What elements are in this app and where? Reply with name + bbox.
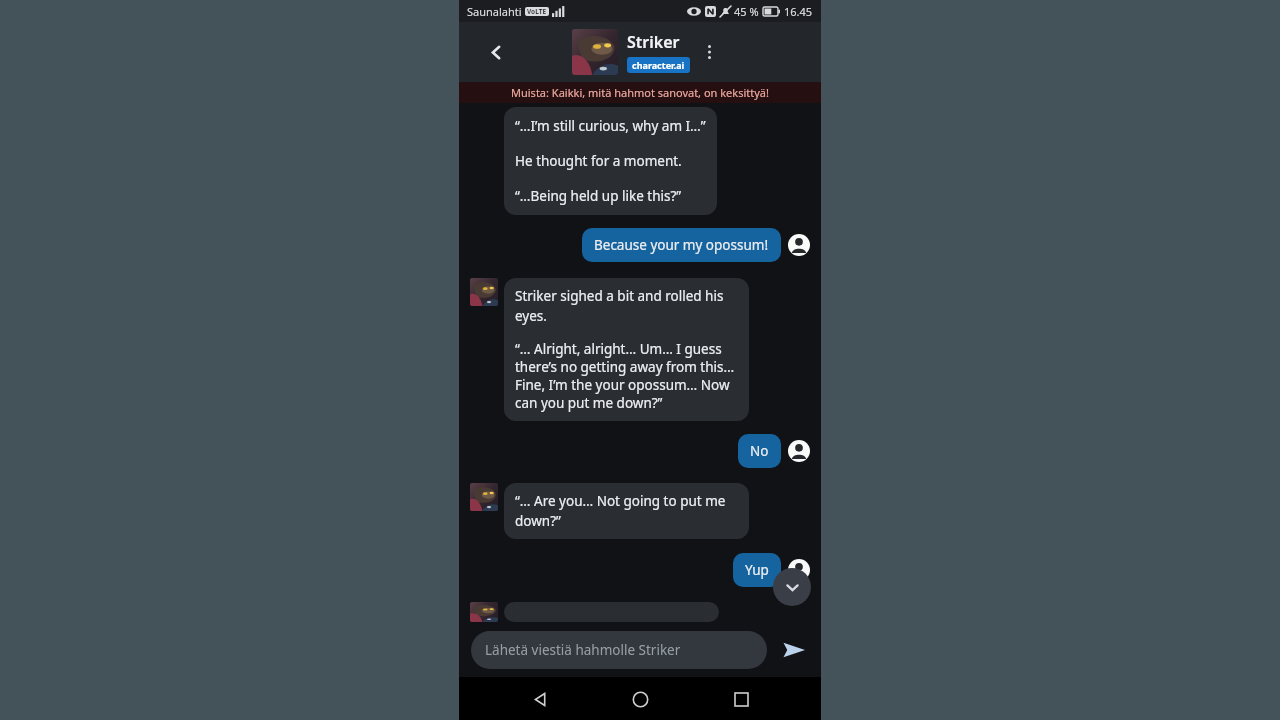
- staticText: Yup: [745, 561, 769, 579]
- staticText: VoLTE: [527, 7, 547, 16]
- button[interactable]: Home: [620, 679, 660, 719]
- button[interactable]: Because your my opossum!: [582, 228, 781, 262]
- button[interactable]: Back: [479, 35, 513, 69]
- button[interactable]: “…I’m still curious, why am I…”: [504, 107, 717, 215]
- button[interactable]: Striker looked mildly annoyed.: [504, 602, 719, 622]
- button[interactable]: Scroll to bottom: [773, 568, 811, 606]
- button[interactable]: Lähetä viestiä hahmolle Striker: [471, 631, 767, 669]
- staticText: Striker: [627, 31, 680, 53]
- staticText: Because your my opossum!: [594, 236, 769, 254]
- staticText: No: [750, 442, 769, 460]
- staticText: “… Alright, alright… Um… I guess there’s…: [515, 340, 738, 412]
- staticText: “… Are you… Not going to put me down?”: [515, 492, 738, 530]
- button[interactable]: Recent apps: [721, 679, 761, 719]
- button[interactable]: More options: [698, 41, 720, 63]
- button[interactable]: Yup: [733, 553, 781, 587]
- staticText: “…I’m still curious, why am I…”: [515, 117, 706, 135]
- staticText: 45 %: [734, 4, 759, 19]
- button[interactable]: Striker sighed a bit and rolled his eyes…: [504, 278, 749, 421]
- button[interactable]: character.ai: [627, 57, 690, 73]
- button[interactable]: No: [738, 434, 781, 468]
- button[interactable]: Back: [520, 679, 560, 719]
- staticText: Muista: Kaikki, mitä hahmot sanovat, on …: [511, 85, 769, 100]
- staticText: Lähetä viestiä hahmolle Striker: [485, 641, 681, 659]
- staticText: He thought for a moment.: [515, 152, 682, 170]
- staticText: 16.45: [784, 4, 813, 19]
- button[interactable]: “… Are you… Not going to put me down?”: [504, 483, 749, 539]
- staticText: character.ai: [632, 59, 685, 71]
- staticText: Saunalahti: [467, 4, 522, 19]
- staticText: Striker sighed a bit and rolled his eyes…: [515, 287, 738, 325]
- button[interactable]: Send: [779, 635, 809, 665]
- staticText: “…Being held up like this?”: [515, 187, 682, 205]
